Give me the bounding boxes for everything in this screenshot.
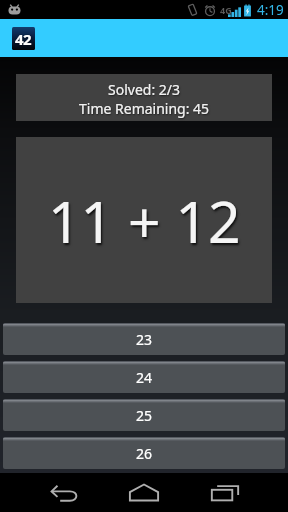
button[interactable]: Home	[120, 473, 168, 512]
button[interactable]: Recent apps	[201, 473, 249, 512]
button[interactable]: Back	[40, 473, 88, 512]
staticText: 25	[136, 406, 153, 425]
staticText: 42	[15, 29, 32, 49]
staticText: 11 + 12	[48, 182, 241, 260]
button[interactable]: 26	[3, 437, 285, 469]
button[interactable]: 25	[3, 399, 285, 431]
staticText: 23	[136, 330, 153, 349]
button[interactable]: 24	[3, 361, 285, 393]
staticText: 4G	[220, 4, 232, 16]
staticText: Solved: 2/3	[108, 80, 181, 99]
staticText: Time Remaining: 45	[79, 99, 210, 118]
button[interactable]: App icon	[12, 27, 35, 50]
staticText: 4:19	[257, 1, 284, 19]
button[interactable]: 23	[3, 323, 285, 355]
staticText: 24	[136, 368, 153, 387]
staticText: 26	[136, 444, 153, 463]
